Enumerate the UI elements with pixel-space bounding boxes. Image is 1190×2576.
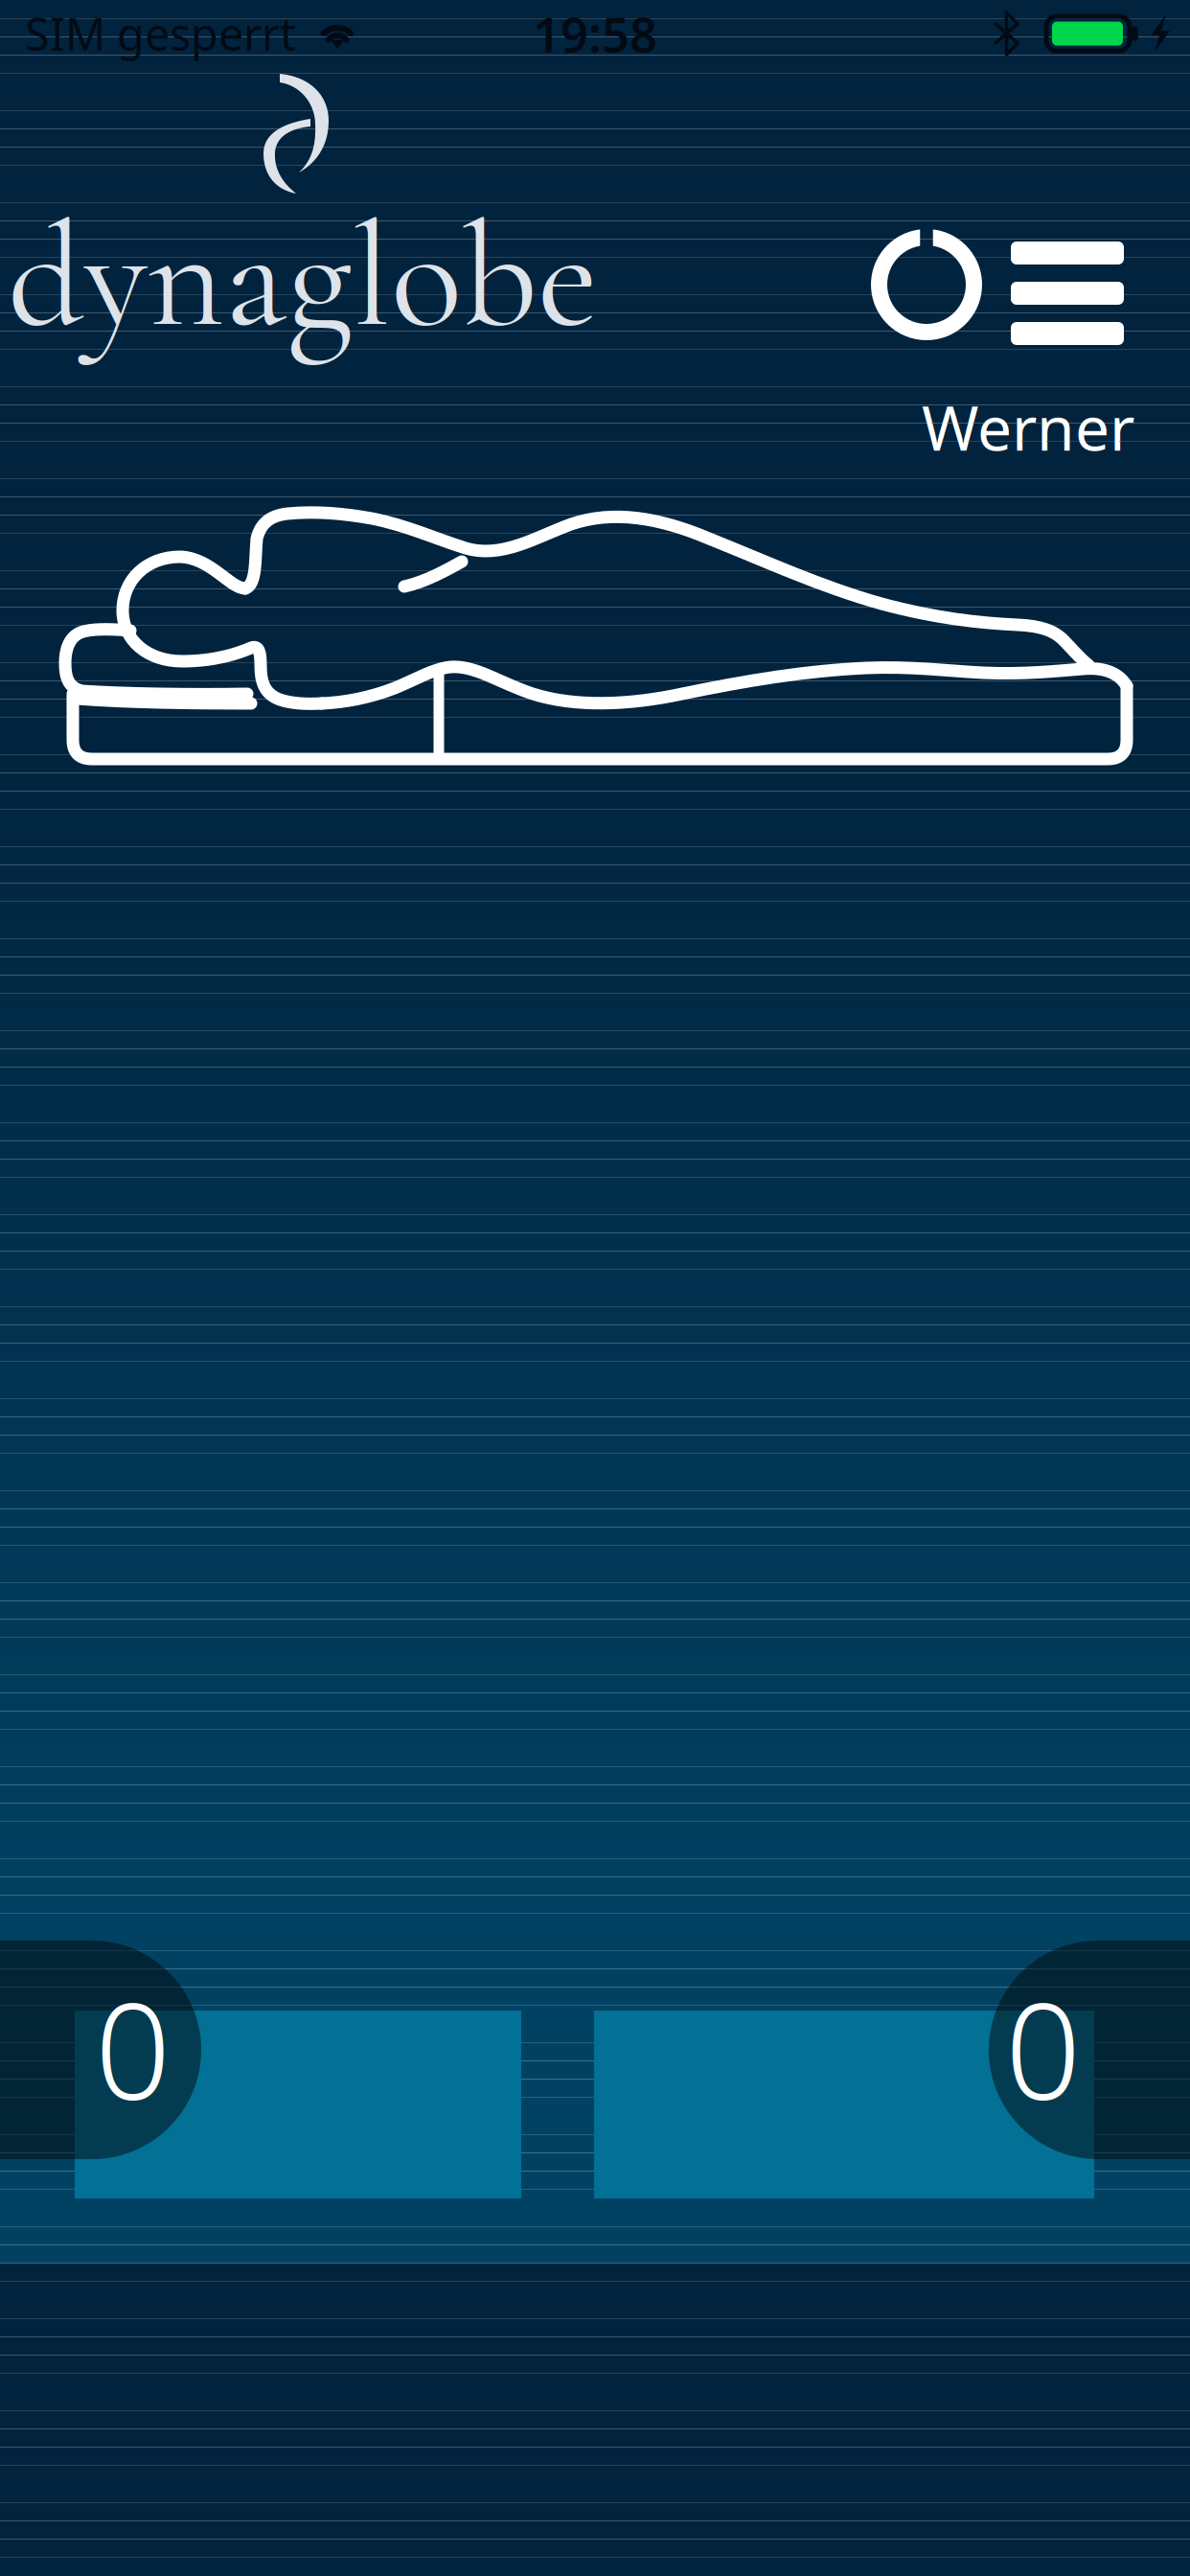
staticText: SIM gesperrt <box>25 4 296 63</box>
staticText: 19:58 <box>533 1 657 66</box>
staticText: dynaglobe <box>8 187 598 366</box>
button[interactable]: Power <box>0 0 1190 402</box>
staticText: Werner <box>922 386 1134 468</box>
staticText: 0 <box>1005 1960 1081 2136</box>
staticText: 0 <box>95 1960 171 2136</box>
button[interactable]: Menu <box>0 0 1190 402</box>
